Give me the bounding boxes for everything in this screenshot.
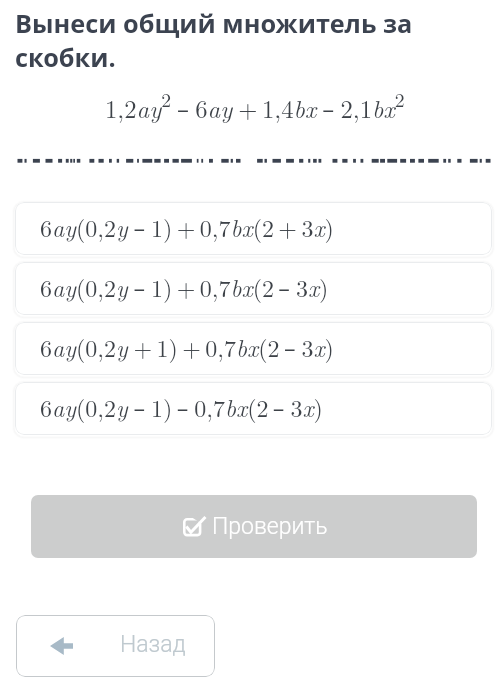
button[interactable]: 6ay(0,2y + 1) + 0,7bx(2 – 3x) — [15, 322, 492, 375]
staticText: 6ay(0,2y + 1) + 0,7bx(2 – 3x) — [40, 330, 334, 364]
staticText: Вынеси общий множитель за скобки. — [15, 6, 417, 74]
staticText: 6ay(0,2y – 1) + 0,7bx(2 – 3x) — [40, 270, 329, 304]
button[interactable]: Назад — [16, 615, 215, 677]
button[interactable]: 6ay(0,2y – 1) + 0,7bx(2 – 3x) — [15, 262, 492, 315]
button[interactable]: Проверить — [31, 495, 477, 558]
staticText: Проверить — [212, 513, 328, 540]
staticText: 6ay(0,2y – 1) – 0,7bx(2 – 3x) — [40, 390, 323, 424]
button[interactable]: 6ay(0,2y – 1) + 0,7bx(2 + 3x) — [15, 202, 492, 255]
staticText: 1,2ay2 – 6ay + 1,4bx – 2,1bx2 — [105, 85, 405, 125]
staticText: 6ay(0,2y – 1) + 0,7bx(2 + 3x) — [40, 210, 334, 244]
staticText: Назад — [120, 631, 186, 658]
button[interactable]: 6ay(0,2y – 1) – 0,7bx(2 – 3x) — [15, 382, 492, 435]
